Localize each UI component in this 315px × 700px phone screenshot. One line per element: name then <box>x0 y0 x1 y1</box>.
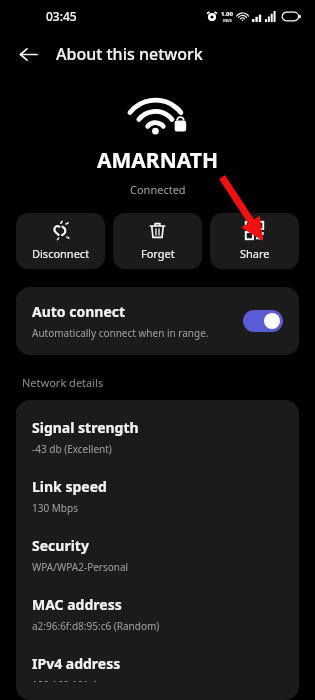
button[interactable]: Link speed <box>32 477 283 515</box>
staticText: Connected <box>130 182 186 197</box>
staticText: -43 db (Excellent) <box>32 442 112 456</box>
button[interactable]: Auto connect <box>16 287 299 355</box>
button[interactable]: IPv4 address <box>32 654 283 682</box>
staticText: MAC address <box>32 595 122 614</box>
staticText: a2:96:6f:d8:95:c6 (Random) <box>32 619 160 633</box>
staticText: AMARNATH <box>97 146 218 175</box>
staticText: About this network <box>56 43 203 65</box>
staticText: Network details <box>22 375 104 390</box>
staticText: Disconnect <box>32 246 90 261</box>
staticText: Security <box>32 536 89 555</box>
staticText: Auto connect <box>32 302 126 321</box>
button[interactable]: Signal strength <box>32 418 283 456</box>
button[interactable]: Back <box>12 38 44 70</box>
button[interactable]: Disconnect <box>16 213 105 269</box>
staticText: 1.00 <box>221 10 233 18</box>
staticText: Forget <box>141 246 175 261</box>
staticText: Signal strength <box>32 418 139 437</box>
button[interactable]: MAC address <box>32 595 283 633</box>
button[interactable]: Security <box>32 536 283 574</box>
staticText: 03:45 <box>46 8 77 24</box>
button[interactable]: Forget <box>113 213 202 269</box>
staticText: Share <box>240 246 270 261</box>
staticText: KB/S <box>223 18 232 23</box>
staticText: Automatically connect when in range. <box>32 326 209 340</box>
staticText: Link speed <box>32 477 107 496</box>
other: Auto connect toggle <box>243 310 283 332</box>
staticText: 130 Mbps <box>32 501 78 515</box>
button[interactable]: Share <box>210 213 299 269</box>
staticText: IPv4 address <box>32 654 121 673</box>
staticText: 192.168.101.4 <box>32 678 98 682</box>
staticText: WPA/WPA2-Personal <box>32 560 129 574</box>
